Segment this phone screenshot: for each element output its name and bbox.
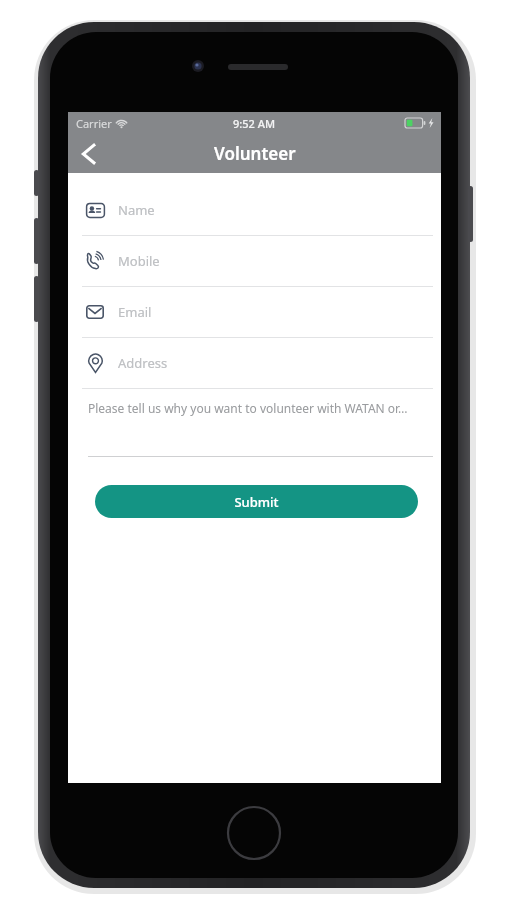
staticText: Address [118,354,168,372]
button[interactable]: Name [68,185,441,235]
button[interactable]: Back [68,134,108,173]
staticText: Submit [234,493,279,511]
staticText: Volunteer [214,142,296,165]
staticText: Name [118,201,155,219]
button[interactable]: Submit [95,485,418,518]
button[interactable]: Address [68,338,441,388]
staticText: Carrier [76,116,112,131]
button[interactable]: Please tell us why you want to volunteer… [68,389,441,456]
staticText: Email [118,303,152,321]
staticText: 9:52 AM [233,116,276,131]
button[interactable]: Email [68,287,441,337]
staticText: Please tell us why you want to volunteer… [88,400,408,416]
staticText: Mobile [118,252,160,270]
button[interactable]: Mobile [68,236,441,286]
